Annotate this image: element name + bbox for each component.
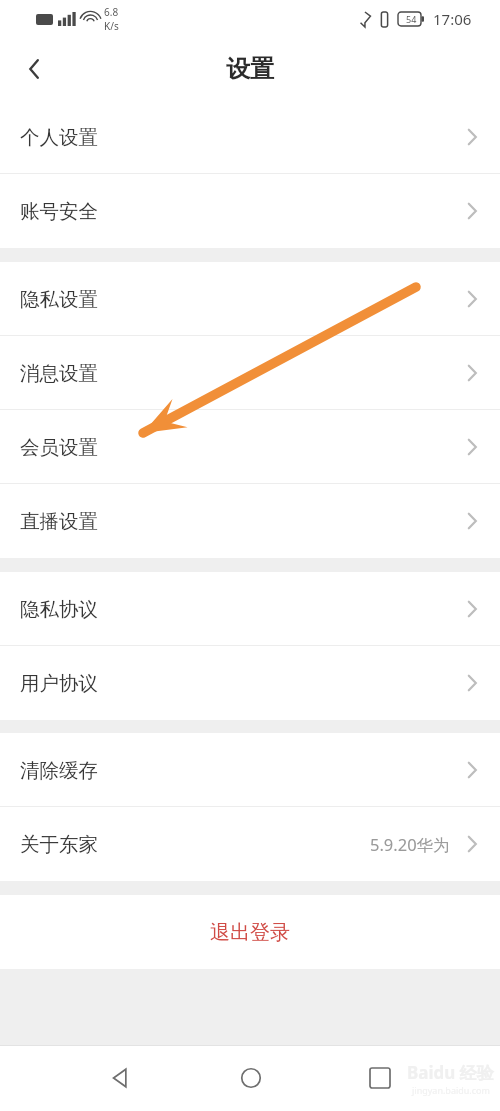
button[interactable]: Back bbox=[56, 1050, 186, 1106]
staticText: 关于东家 bbox=[20, 832, 98, 857]
staticText: 个人设置 bbox=[20, 125, 98, 150]
staticText: 退出登录 bbox=[210, 920, 290, 945]
staticText: jingyan.baidu.com bbox=[412, 1084, 490, 1096]
staticText: 隐私设置 bbox=[20, 287, 98, 312]
staticText: 6.8 bbox=[104, 5, 119, 19]
button[interactable]: 退出登录 bbox=[0, 895, 500, 969]
staticText: 直播设置 bbox=[20, 509, 98, 534]
staticText: 54 bbox=[406, 13, 417, 25]
button[interactable]: 会员设置 bbox=[0, 410, 500, 484]
staticText: 消息设置 bbox=[20, 361, 98, 386]
button[interactable]: Home bbox=[186, 1050, 315, 1106]
button[interactable]: 个人设置 bbox=[0, 100, 500, 174]
button[interactable]: Recents bbox=[315, 1050, 444, 1106]
button[interactable]: 用户协议 bbox=[0, 646, 500, 720]
staticText: 账号安全 bbox=[20, 199, 98, 224]
staticText: K/s bbox=[104, 19, 119, 33]
button[interactable]: Back bbox=[12, 47, 56, 91]
button[interactable]: 消息设置 bbox=[0, 336, 500, 410]
button[interactable]: 直播设置 bbox=[0, 484, 500, 558]
button[interactable]: 账号安全 bbox=[0, 174, 500, 248]
staticText: 隐私协议 bbox=[20, 597, 98, 622]
button[interactable]: 清除缓存 bbox=[0, 733, 500, 807]
staticText: 用户协议 bbox=[20, 671, 98, 696]
button[interactable]: 隐私设置 bbox=[0, 262, 500, 336]
staticText: 5.9.20华为 bbox=[370, 833, 450, 856]
staticText: 设置 bbox=[226, 54, 274, 84]
button[interactable]: 关于东家 bbox=[0, 807, 500, 881]
staticText: Baidu 经验 bbox=[407, 1061, 494, 1084]
staticText: 清除缓存 bbox=[20, 758, 98, 783]
staticText: 会员设置 bbox=[20, 435, 98, 460]
button[interactable]: 隐私协议 bbox=[0, 572, 500, 646]
staticText: 17:06 bbox=[433, 9, 472, 29]
